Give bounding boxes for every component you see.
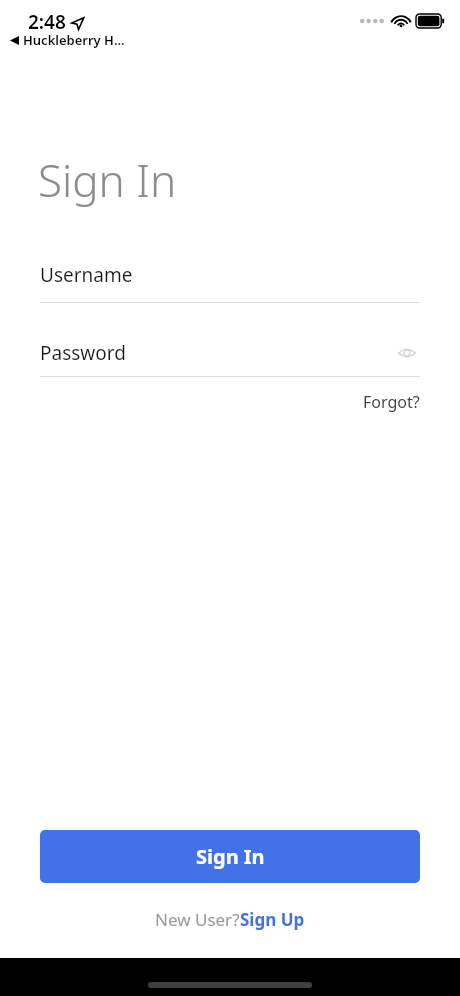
button[interactable]: Sign In (40, 830, 420, 883)
staticText: Password (40, 340, 126, 366)
staticText: Sign Up (240, 908, 305, 931)
button[interactable]: Password (40, 340, 420, 366)
button[interactable]: Show password (394, 340, 420, 366)
staticText: Sign In (38, 150, 177, 210)
staticText: Huckleberry H... (23, 31, 125, 49)
staticText: 2:48 (28, 9, 66, 35)
staticText: Username (40, 262, 133, 288)
staticText: New User? (155, 908, 240, 931)
button[interactable]: Forgot? (363, 388, 420, 416)
button[interactable]: Username (40, 262, 420, 303)
button[interactable]: Sign Up (240, 908, 305, 931)
staticText: Forgot? (363, 391, 420, 413)
staticText: Sign In (196, 843, 265, 870)
